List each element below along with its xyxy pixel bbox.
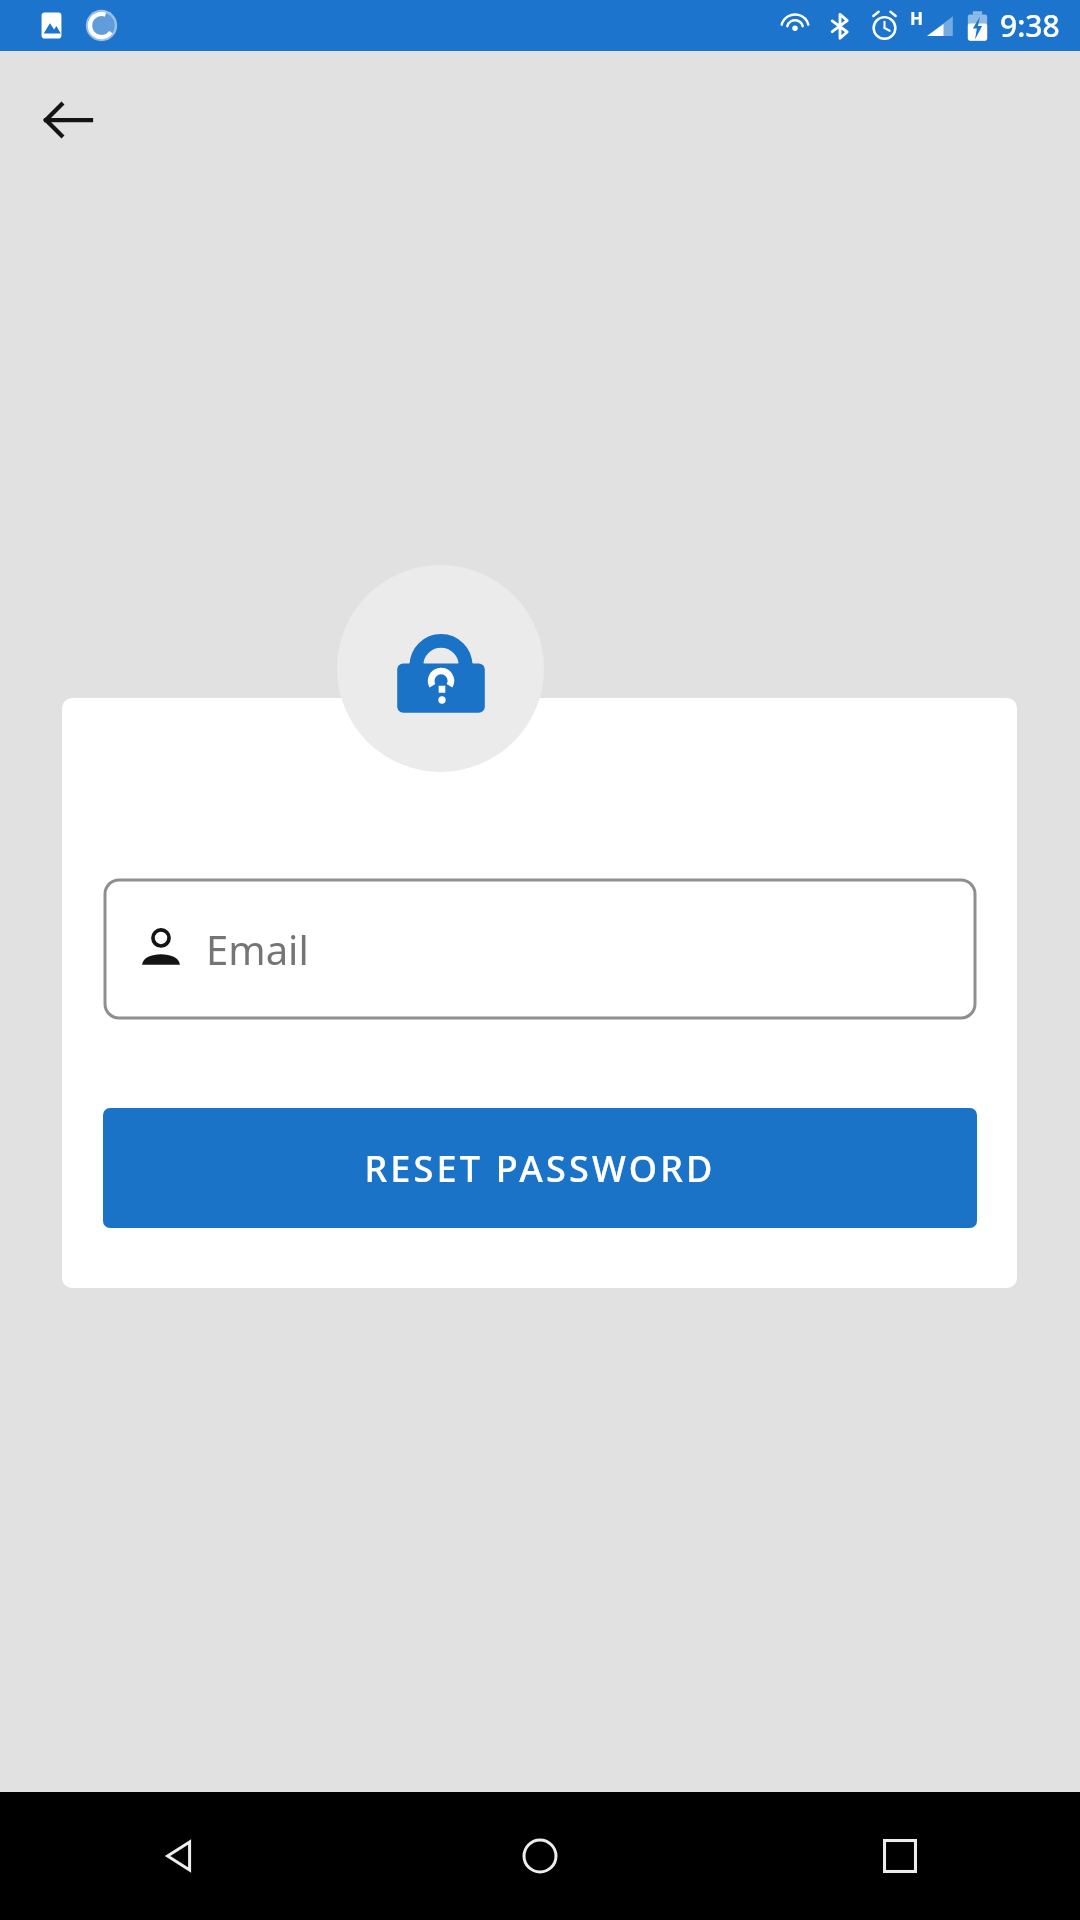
staticText: RESET PASSWORD — [364, 1144, 716, 1193]
staticText: H — [910, 7, 924, 30]
button[interactable]: Home — [360, 1792, 720, 1920]
staticText: 9:38 — [1000, 5, 1060, 46]
button[interactable]: Recent apps — [720, 1792, 1080, 1920]
button[interactable]: Email — [105, 880, 975, 1018]
button[interactable]: Back — [24, 76, 112, 164]
button[interactable]: Back — [0, 1792, 360, 1920]
staticText: Email — [206, 922, 309, 976]
button[interactable]: RESET PASSWORD — [103, 1108, 977, 1228]
